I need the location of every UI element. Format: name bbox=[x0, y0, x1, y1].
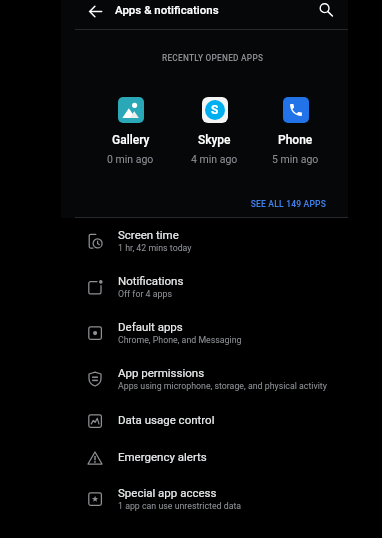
button[interactable] bbox=[315, 0, 337, 20]
staticText: RECENTLY OPENED APPS bbox=[162, 53, 264, 63]
staticText: Emergency alerts bbox=[118, 450, 207, 463]
button[interactable]: Phone bbox=[255, 97, 336, 165]
staticText: Skype bbox=[198, 133, 231, 147]
staticText: 4 min ago bbox=[191, 153, 238, 165]
staticText: Apps & notifications bbox=[115, 3, 219, 16]
staticText: Special app access bbox=[118, 486, 217, 499]
button[interactable]: Notifications bbox=[61, 264, 382, 310]
staticText: 1 app can use unrestricted data bbox=[118, 501, 242, 511]
button[interactable]: SEE ALL 149 APPS bbox=[226, 198, 326, 210]
staticText: Screen time bbox=[118, 228, 179, 241]
button[interactable]: S bbox=[174, 97, 255, 165]
staticText: 0 min ago bbox=[107, 153, 154, 165]
staticText: 5 min ago bbox=[272, 153, 319, 165]
staticText: Default apps bbox=[118, 320, 183, 333]
staticText: Chrome, Phone, and Messaging bbox=[118, 335, 242, 345]
staticText: S bbox=[211, 103, 219, 117]
button[interactable]: Gallery bbox=[90, 97, 171, 165]
staticText: SEE ALL 149 APPS bbox=[250, 199, 326, 209]
staticText: App permissions bbox=[118, 366, 205, 379]
button[interactable]: Screen time bbox=[61, 218, 382, 264]
staticText: Notifications bbox=[118, 274, 184, 287]
staticText: Data usage control bbox=[118, 413, 215, 426]
button[interactable]: Emergency alerts bbox=[61, 439, 382, 476]
staticText: Gallery bbox=[112, 133, 150, 147]
staticText: Apps using microphone, storage, and phys… bbox=[118, 381, 327, 391]
staticText: Off for 4 apps bbox=[118, 289, 172, 299]
button[interactable] bbox=[84, 0, 107, 22]
button[interactable]: Special app access bbox=[61, 476, 382, 522]
button[interactable]: Default apps bbox=[61, 310, 382, 356]
button[interactable]: Data usage control bbox=[61, 402, 382, 439]
staticText: Phone bbox=[278, 133, 313, 147]
staticText: 1 hr, 42 mins today bbox=[118, 243, 192, 253]
button[interactable]: App permissions bbox=[61, 356, 382, 402]
